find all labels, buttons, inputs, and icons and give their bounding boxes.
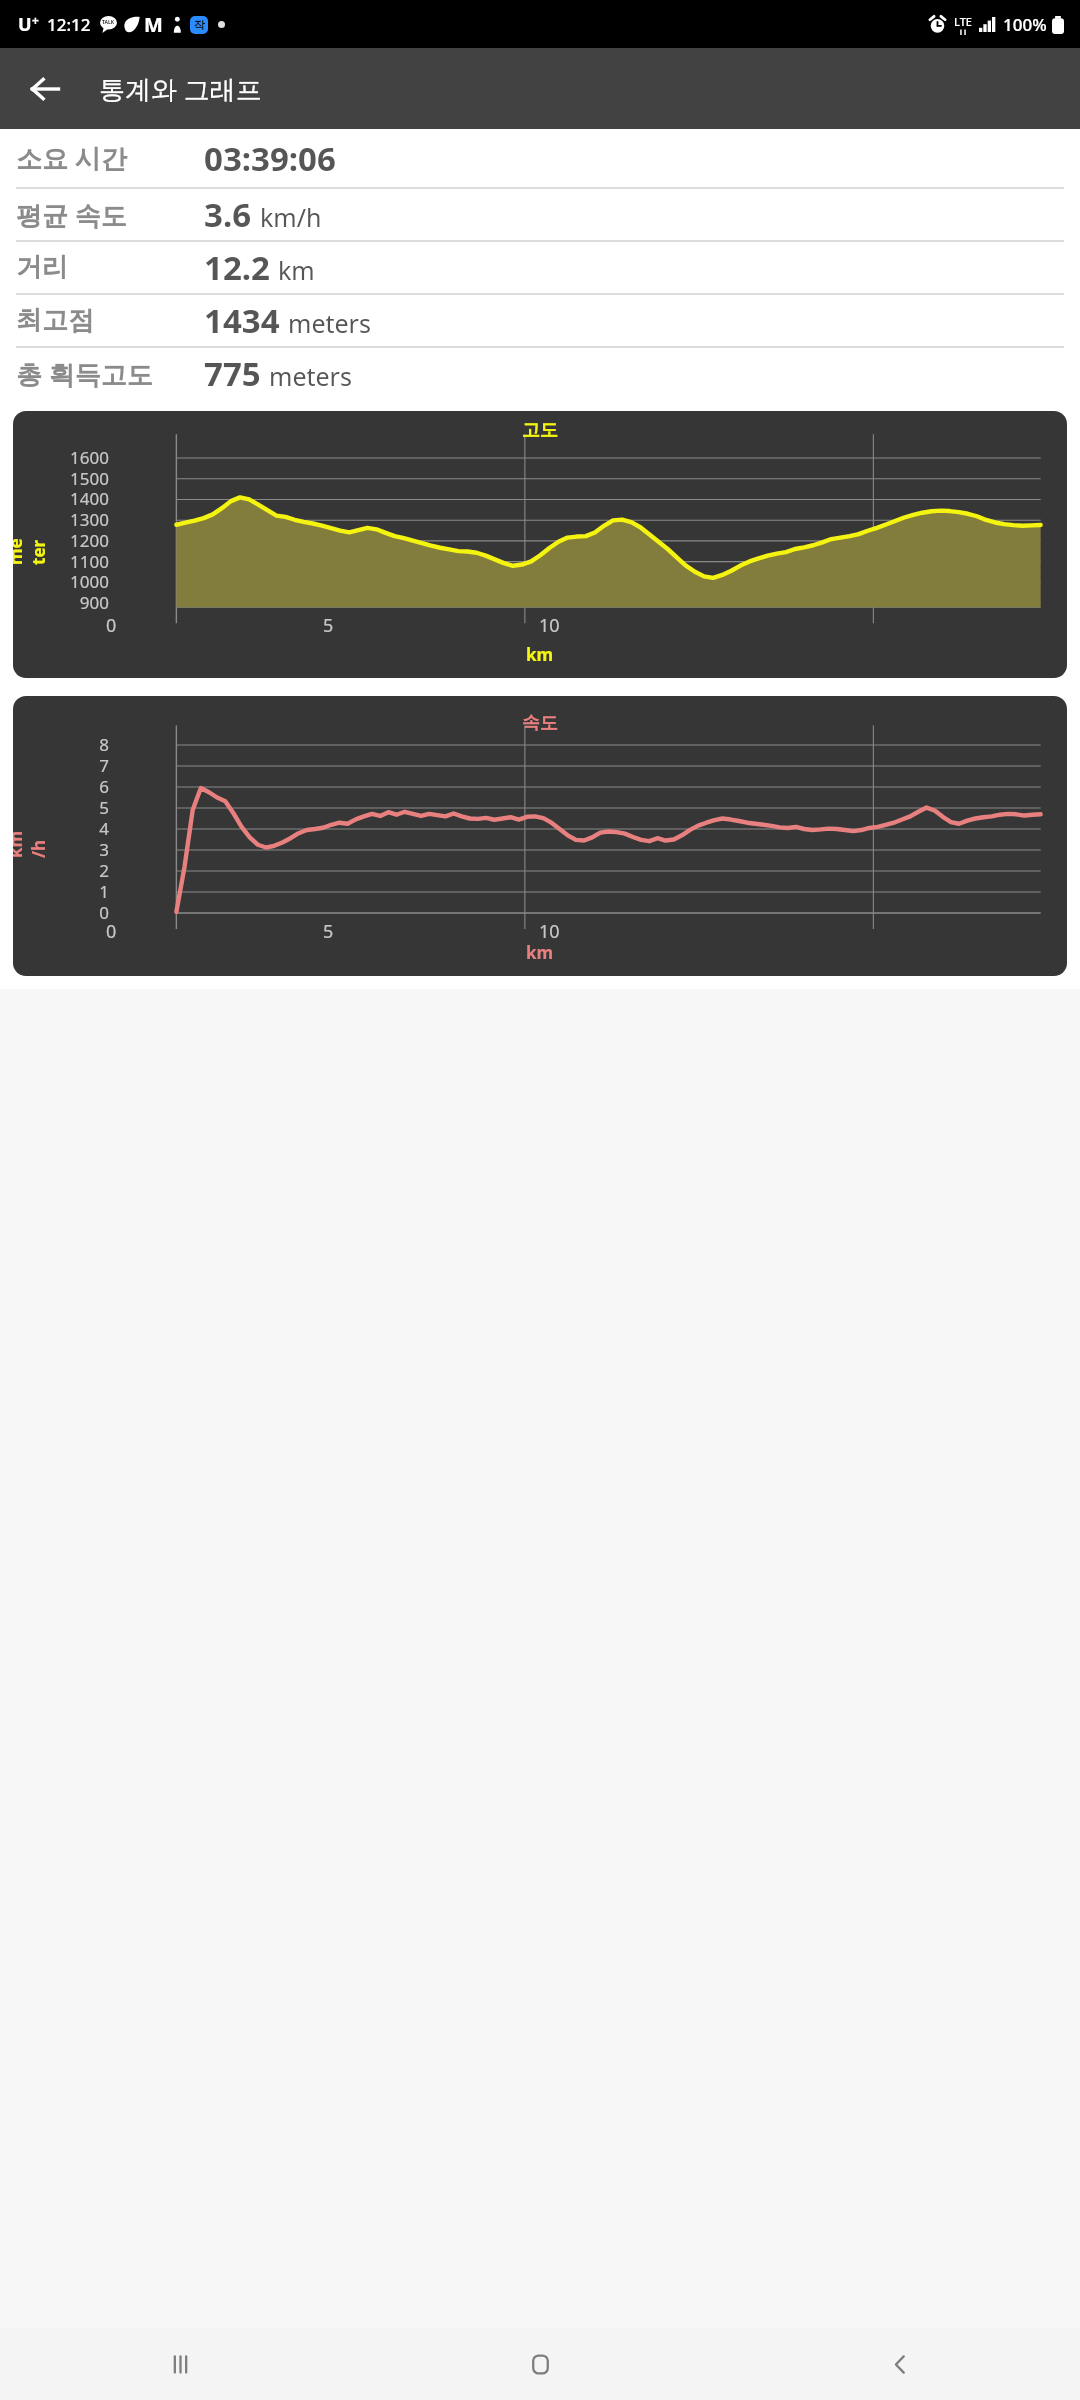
button[interactable]: Recents: [0, 2328, 360, 2400]
staticText: 100%: [1003, 13, 1047, 36]
staticText: 775: [204, 351, 261, 396]
staticText: 최고점: [16, 304, 192, 337]
button[interactable]: Back: [720, 2328, 1080, 2400]
staticText: 0: [13, 901, 109, 924]
button[interactable]: 거리: [16, 242, 1064, 295]
staticText: 12:12: [47, 13, 91, 36]
staticText: 1434: [204, 298, 280, 343]
staticText: 작: [194, 18, 205, 32]
staticText: 5: [323, 919, 334, 944]
staticText: 8: [13, 733, 109, 756]
staticText: 3.6: [204, 192, 252, 237]
staticText: 2: [13, 859, 109, 882]
staticText: meters: [288, 306, 371, 340]
staticText: 속도: [522, 712, 558, 735]
staticText: 1400: [13, 487, 109, 510]
staticText: 1300: [13, 508, 109, 531]
staticText: km: [278, 253, 315, 287]
staticText: 0: [106, 613, 117, 638]
button[interactable]: 고도: [13, 411, 1067, 678]
staticText: 1200: [13, 529, 109, 552]
staticText: 평균 속도: [16, 197, 192, 233]
staticText: 10: [539, 919, 560, 944]
staticText: 6: [13, 775, 109, 798]
button[interactable]: Back: [16, 60, 74, 118]
staticText: 10: [539, 613, 560, 638]
staticText: 1600: [13, 446, 109, 469]
staticText: 통계와 그래프: [99, 71, 262, 107]
staticText: LTE: [954, 14, 972, 29]
staticText: 총 획득고도: [16, 356, 192, 392]
button[interactable]: 속도: [13, 696, 1067, 976]
staticText: 1000: [13, 570, 109, 593]
staticText: km: [526, 643, 554, 666]
button[interactable]: 평균 속도: [16, 189, 1064, 242]
staticText: +: [32, 12, 39, 28]
staticText: 0: [106, 919, 117, 944]
staticText: 1500: [13, 467, 109, 490]
staticText: 5: [13, 796, 109, 819]
staticText: M: [144, 11, 163, 38]
staticText: 03:39:06: [204, 136, 336, 181]
button[interactable]: 소요 시간: [16, 129, 1064, 189]
staticText: 고도: [522, 419, 558, 442]
staticText: TALK: [102, 19, 115, 26]
staticText: 1: [13, 880, 109, 903]
button[interactable]: 총 획득고도: [16, 348, 1064, 399]
button[interactable]: 최고점: [16, 295, 1064, 348]
staticText: 7: [13, 754, 109, 777]
staticText: 소요 시간: [16, 140, 192, 176]
staticText: 3: [13, 838, 109, 861]
staticText: U: [18, 12, 32, 37]
staticText: 5: [323, 613, 334, 638]
staticText: 4: [13, 817, 109, 840]
staticText: km: [526, 941, 554, 964]
staticText: meters: [269, 359, 352, 393]
staticText: 1100: [13, 550, 109, 573]
button[interactable]: Home: [360, 2328, 720, 2400]
staticText: 12.2: [204, 245, 270, 290]
staticText: km/h: [13, 830, 50, 858]
staticText: meter: [13, 537, 50, 565]
staticText: 900: [13, 591, 109, 614]
staticText: km/h: [260, 200, 322, 234]
staticText: 거리: [16, 251, 192, 284]
